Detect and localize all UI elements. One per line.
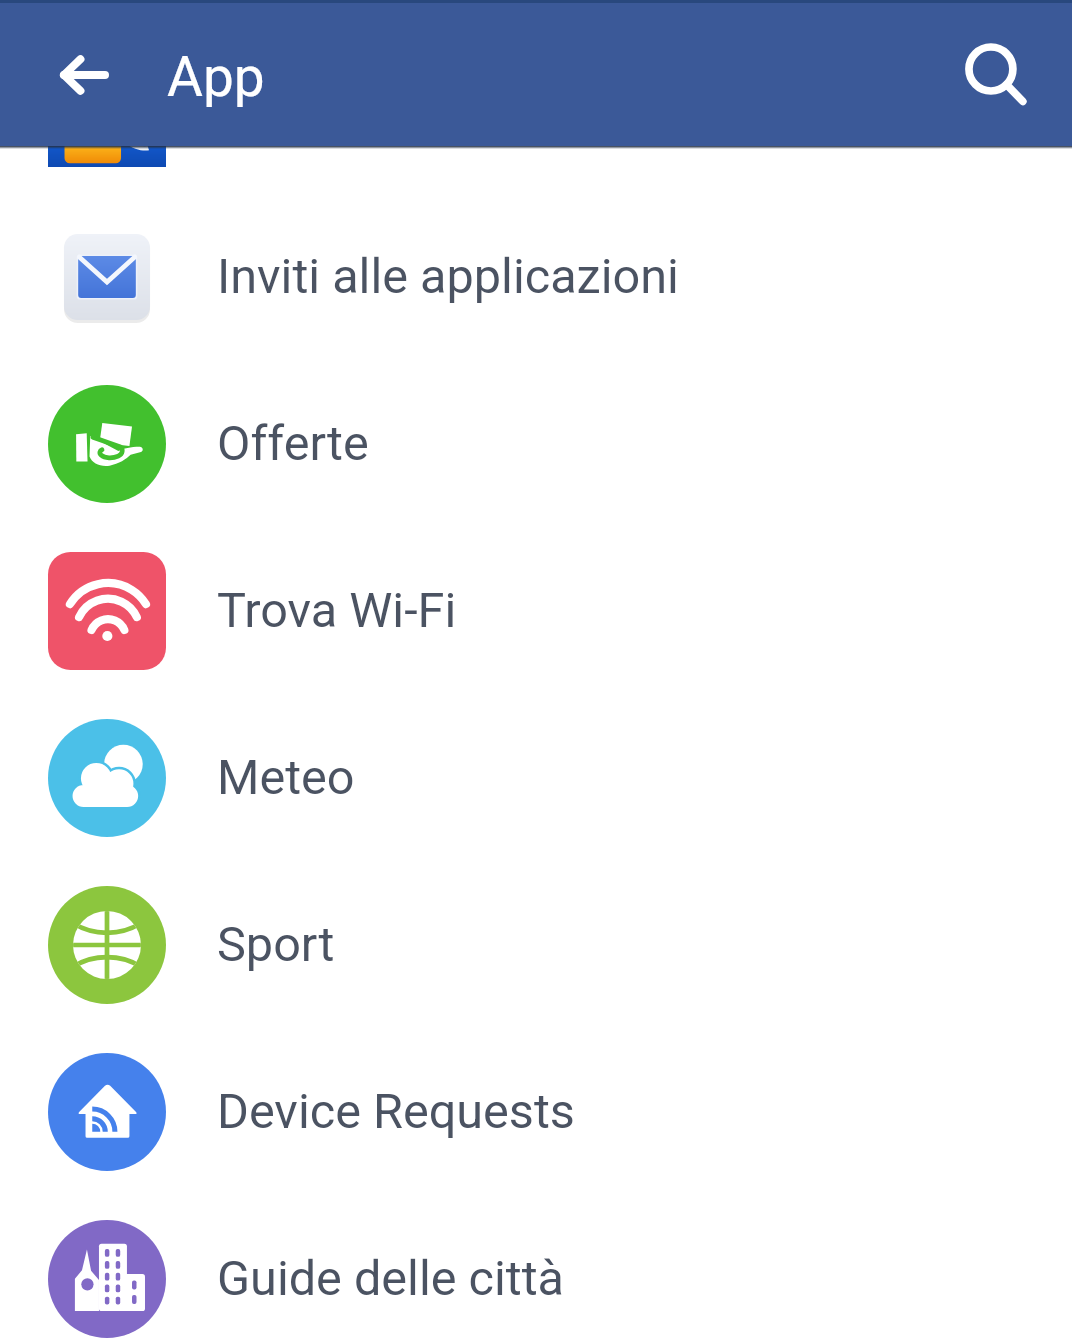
button[interactable]: Back [33, 23, 137, 127]
button[interactable]: Giochi [0, 0, 1072, 167]
staticText: Inviti alle applicazioni [217, 248, 679, 305]
staticText: Device Requests [217, 1083, 575, 1140]
button[interactable]: Device Requests [0, 1028, 1072, 1195]
staticText: Offerte [217, 415, 369, 472]
staticText: Meteo [217, 749, 355, 806]
staticText: Trova Wi-Fi [217, 582, 457, 639]
button[interactable]: Meteo [0, 694, 1072, 861]
button[interactable]: Sport [0, 861, 1072, 1028]
button[interactable]: Inviti alle applicazioni [0, 193, 1072, 360]
button[interactable]: Offerte [0, 360, 1072, 527]
button[interactable]: Trova Wi-Fi [0, 527, 1072, 694]
button[interactable]: Search [939, 17, 1043, 121]
button[interactable]: Guide delle città [0, 1195, 1072, 1344]
staticText: App [167, 45, 265, 109]
staticText: Sport [217, 916, 335, 973]
staticText: Guide delle città [217, 1250, 565, 1307]
